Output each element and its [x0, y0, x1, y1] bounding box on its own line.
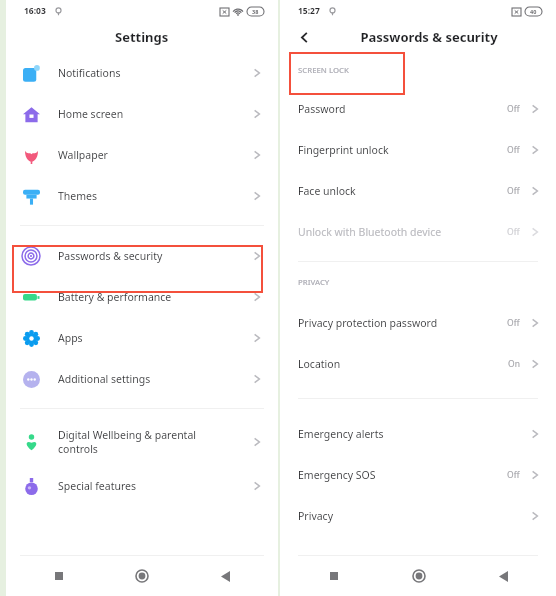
- staticText: Off: [507, 226, 520, 238]
- button[interactable]: Privacy protection password: [280, 302, 556, 343]
- button[interactable]: Apps: [6, 317, 278, 358]
- staticText: Passwords & security: [58, 249, 163, 263]
- button[interactable]: Password: [280, 88, 556, 129]
- staticText: 38: [252, 8, 259, 15]
- button[interactable]: Passwords & security: [6, 235, 278, 276]
- button[interactable]: Back: [488, 561, 518, 591]
- staticText: Off: [507, 144, 520, 156]
- button[interactable]: Themes: [6, 175, 278, 216]
- staticText: Privacy protection password: [298, 316, 507, 330]
- button[interactable]: Additional settings: [6, 358, 278, 399]
- button[interactable]: Emergency alerts: [280, 413, 556, 454]
- staticText: Emergency SOS: [298, 468, 507, 482]
- staticText: Battery & performance: [58, 290, 172, 304]
- button[interactable]: Battery & performance: [6, 276, 278, 317]
- button[interactable]: Emergency SOS: [280, 454, 556, 495]
- staticText: Special features: [58, 479, 137, 493]
- staticText: Password: [298, 102, 507, 116]
- staticText: Location: [298, 357, 508, 371]
- button[interactable]: Wallpaper: [6, 134, 278, 175]
- staticText: 15:27: [298, 5, 320, 17]
- button[interactable]: Fingerprint unlock: [280, 129, 556, 170]
- staticText: PRIVACY: [298, 277, 330, 288]
- staticText: Unlock with Bluetooth device: [298, 225, 507, 239]
- button[interactable]: Special features: [6, 465, 278, 506]
- button[interactable]: Face unlock: [280, 170, 556, 211]
- staticText: 16:03: [24, 5, 46, 17]
- staticText: Emergency alerts: [298, 427, 528, 441]
- button[interactable]: Home: [404, 561, 434, 591]
- staticText: SCREEN LOCK: [298, 65, 349, 76]
- staticText: 40: [530, 8, 537, 15]
- button[interactable]: Home screen: [6, 93, 278, 134]
- staticText: Apps: [58, 331, 83, 345]
- button[interactable]: Location: [280, 343, 556, 384]
- staticText: Digital Wellbeing & parental: [58, 428, 197, 442]
- staticText: Off: [507, 103, 520, 115]
- staticText: controls: [58, 442, 98, 456]
- button[interactable]: Notifications: [6, 52, 278, 93]
- staticText: Passwords & security: [360, 28, 498, 46]
- staticText: Off: [507, 185, 520, 197]
- button[interactable]: Home: [127, 561, 157, 591]
- button[interactable]: Recents: [319, 561, 349, 591]
- button[interactable]: Digital Wellbeing & parental: [6, 418, 278, 465]
- button[interactable]: Privacy: [280, 495, 556, 536]
- staticText: Themes: [58, 189, 98, 203]
- staticText: Settings: [115, 28, 169, 46]
- staticText: Home screen: [58, 107, 124, 121]
- staticText: Notifications: [58, 66, 121, 80]
- staticText: Wallpaper: [58, 148, 108, 162]
- staticText: On: [508, 358, 520, 370]
- button[interactable]: Recents: [44, 561, 74, 591]
- staticText: Face unlock: [298, 184, 507, 198]
- button[interactable]: Back: [292, 25, 316, 49]
- staticText: Privacy: [298, 509, 528, 523]
- staticText: Off: [507, 317, 520, 329]
- staticText: Off: [507, 469, 520, 481]
- staticText: Additional settings: [58, 372, 151, 386]
- button[interactable]: Back: [210, 561, 240, 591]
- button[interactable]: Unlock with Bluetooth device: [280, 211, 556, 252]
- staticText: Fingerprint unlock: [298, 143, 507, 157]
